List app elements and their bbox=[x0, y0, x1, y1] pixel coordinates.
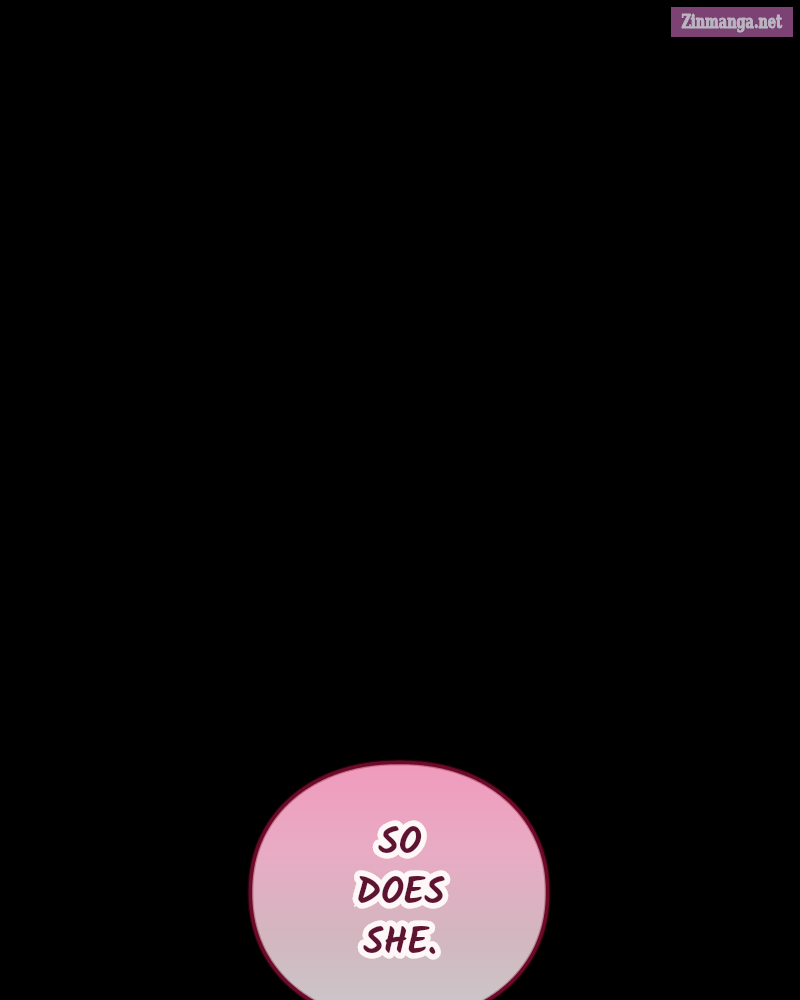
staticText: SO bbox=[378, 815, 422, 874]
button[interactable]: Zinmanga.net watermark bbox=[671, 7, 793, 37]
staticText: SHE. bbox=[363, 915, 437, 974]
staticText: SO bbox=[378, 815, 422, 874]
staticText: SHE. bbox=[363, 915, 437, 974]
staticText: Zinmanga.net bbox=[681, 10, 783, 32]
staticText: Zinmanga.net bbox=[681, 10, 783, 32]
staticText: DOES bbox=[356, 865, 445, 924]
staticText: Zinmanga.net bbox=[681, 10, 783, 32]
staticText: DOES bbox=[356, 865, 445, 924]
